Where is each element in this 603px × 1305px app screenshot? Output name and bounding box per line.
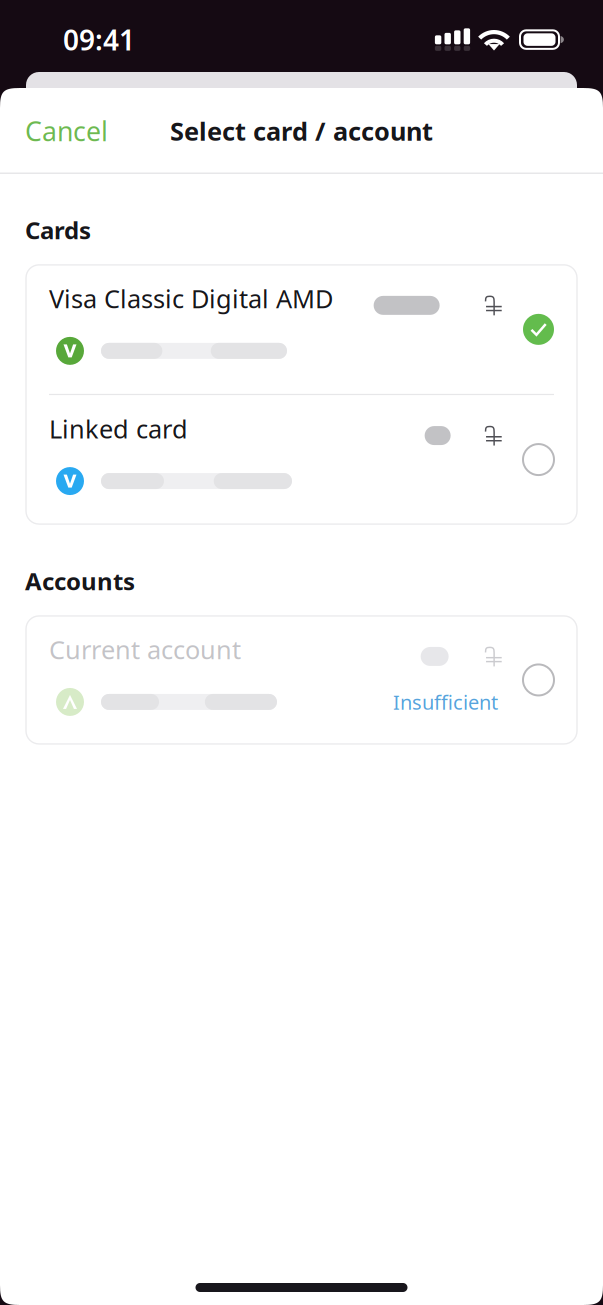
staticText: Insufficient: [393, 689, 498, 715]
staticText: Linked card: [49, 412, 188, 445]
button[interactable]: Current account: [26, 616, 577, 744]
staticText: 09:41: [63, 21, 135, 58]
button[interactable]: Visa Classic Digital AMD: [26, 265, 577, 394]
button[interactable]: Cancel: [0, 95, 124, 167]
staticText: Current account: [49, 633, 241, 666]
staticText: Accounts: [25, 565, 135, 597]
staticText: Visa Classic Digital AMD: [49, 282, 333, 315]
staticText: Select card / account: [170, 114, 433, 148]
staticText: Cards: [25, 214, 91, 246]
button[interactable]: Linked card: [26, 395, 577, 524]
staticText: Cancel: [25, 113, 108, 149]
